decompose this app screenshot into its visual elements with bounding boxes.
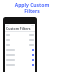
staticText: Custom Filters [6,26,31,31]
button[interactable] [6,62,34,67]
button[interactable] [6,32,34,37]
staticText: Apply Custom Filters [14,2,50,15]
button[interactable] [6,42,34,47]
button[interactable] [6,37,34,42]
button[interactable] [6,47,34,52]
button[interactable] [6,57,34,62]
button[interactable] [6,52,34,57]
